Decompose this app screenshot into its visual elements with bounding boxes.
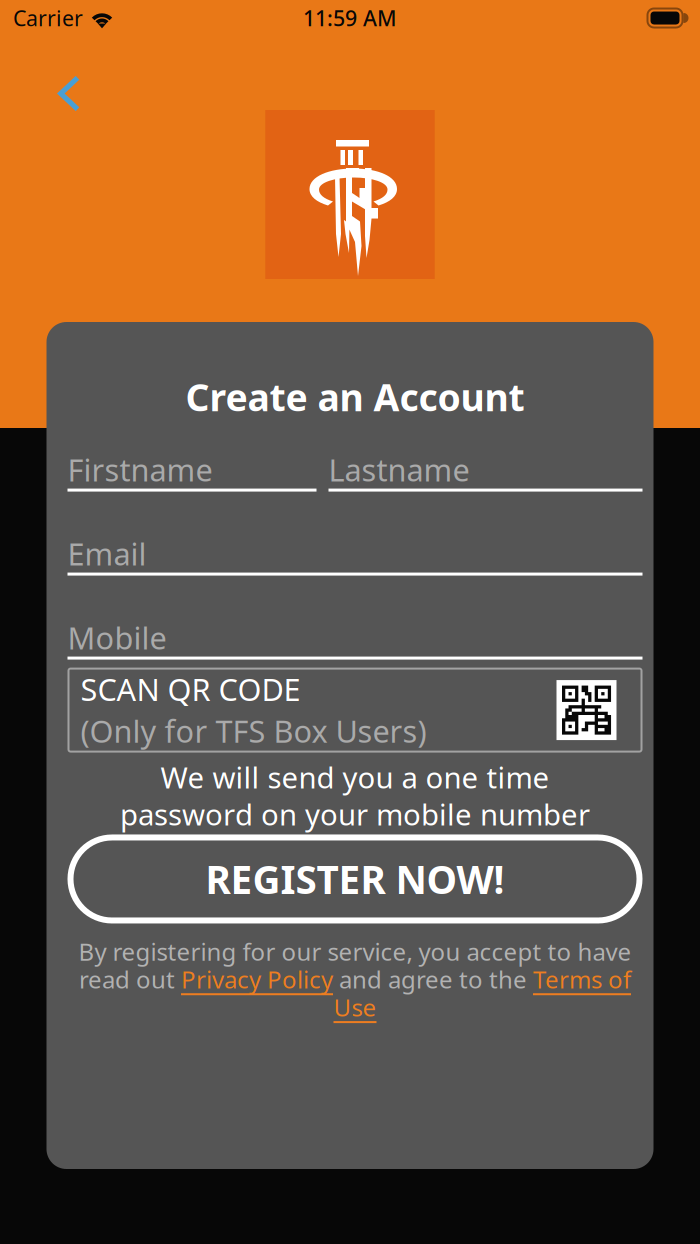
staticText: Email xyxy=(67,533,146,574)
staticText: REGISTER NOW! xyxy=(205,853,504,905)
button[interactable]: Back xyxy=(0,61,106,126)
staticText: 11:59 AM xyxy=(303,4,397,32)
staticText: read out xyxy=(79,963,181,995)
staticText: and agree to the xyxy=(333,963,533,995)
button[interactable]: REGISTER NOW! xyxy=(67,834,642,923)
staticText: We will send you a one time xyxy=(160,758,549,797)
button[interactable]: Privacy Policy xyxy=(181,963,333,995)
staticText: Privacy Policy xyxy=(181,963,333,995)
button[interactable]: Use xyxy=(333,991,376,1023)
staticText: (Only for TFS Box Users) xyxy=(80,711,426,751)
staticText: Create an Account xyxy=(185,372,524,422)
staticText: SCAN QR CODE xyxy=(80,669,300,710)
staticText: Firstname xyxy=(67,449,212,490)
staticText: Lastname xyxy=(328,449,469,490)
staticText: Mobile xyxy=(67,617,166,658)
staticText: Terms of xyxy=(533,963,631,995)
staticText: password on your mobile number xyxy=(120,794,590,833)
button[interactable]: Terms of xyxy=(533,963,631,995)
staticText: Carrier xyxy=(13,4,83,32)
staticText: By registering for our service, you acce… xyxy=(78,935,631,967)
staticText: Use xyxy=(333,991,376,1023)
button[interactable]: SCAN QR CODE xyxy=(67,668,642,753)
